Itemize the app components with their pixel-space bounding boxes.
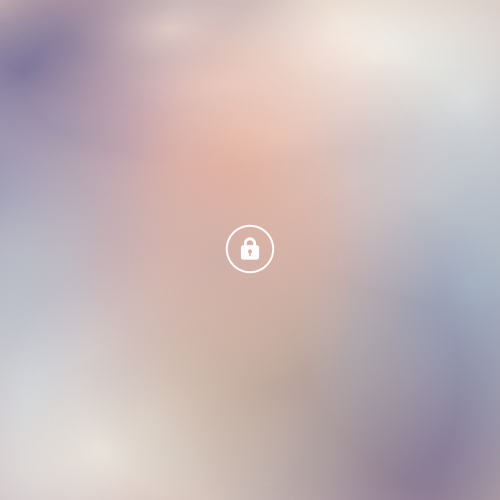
button[interactable]: Unlock bbox=[215, 214, 285, 284]
